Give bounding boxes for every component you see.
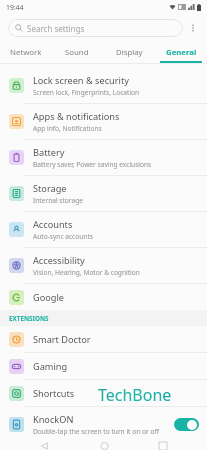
staticText: Auto-sync accounts [33, 232, 93, 241]
button[interactable]: Lock screen & security [0, 68, 207, 103]
staticText: Smart Doctor [33, 333, 91, 346]
button[interactable]: Apps & notifications [0, 104, 207, 139]
staticText: Network [10, 47, 42, 58]
button[interactable]: Battery [0, 140, 207, 175]
staticText: Search settings [27, 23, 85, 34]
staticText: Shortcuts [33, 387, 75, 400]
button[interactable]: Smart Doctor [0, 326, 207, 352]
staticText: TechBone [98, 384, 172, 406]
button[interactable]: General [155, 42, 207, 63]
staticText: Sound [65, 47, 89, 58]
staticText: KnockON [33, 413, 74, 426]
button[interactable]: Network [0, 42, 51, 63]
button[interactable]: Accounts [0, 212, 207, 247]
staticText: Storage [33, 182, 67, 195]
button[interactable]: Search settings [8, 19, 183, 37]
staticText: Google [33, 291, 65, 304]
staticText: Accessibility [33, 254, 85, 267]
staticText: Screen lock, Fingerprints, Location [33, 88, 140, 97]
staticText: App info, Notifications [33, 124, 102, 133]
staticText: Internal storage [33, 196, 83, 205]
button[interactable]: Shortcuts [0, 380, 207, 406]
button[interactable]: Back [29, 442, 59, 450]
staticText: Battery [33, 146, 65, 159]
staticText: Display [116, 47, 143, 58]
button[interactable]: Storage [0, 176, 207, 211]
button[interactable]: More options [183, 18, 203, 38]
staticText: Double-tap the screen to turn it on or o… [33, 427, 159, 436]
staticText: 19:44 [6, 3, 24, 12]
staticText: Battery saver, Power saving exclusions [33, 160, 152, 169]
staticText: Gaming [33, 360, 68, 373]
button[interactable]: Home [89, 442, 119, 450]
button[interactable]: Sound [51, 42, 103, 63]
button[interactable]: Recent apps [148, 442, 178, 450]
button[interactable]: Display [103, 42, 155, 63]
staticText: Accounts [33, 218, 73, 231]
button[interactable]: Gaming [0, 353, 207, 379]
button[interactable]: KnockON toggle [174, 418, 199, 431]
button[interactable]: KnockON [0, 407, 207, 442]
button[interactable]: Google [0, 284, 207, 310]
staticText: Lock screen & security [33, 74, 129, 87]
staticText: EXTENSIONS [9, 314, 49, 323]
staticText: General [166, 47, 197, 58]
staticText: Apps & notifications [33, 110, 120, 123]
staticText: Vision, Hearing, Motor & cognition [33, 268, 140, 277]
button[interactable]: Accessibility [0, 248, 207, 283]
